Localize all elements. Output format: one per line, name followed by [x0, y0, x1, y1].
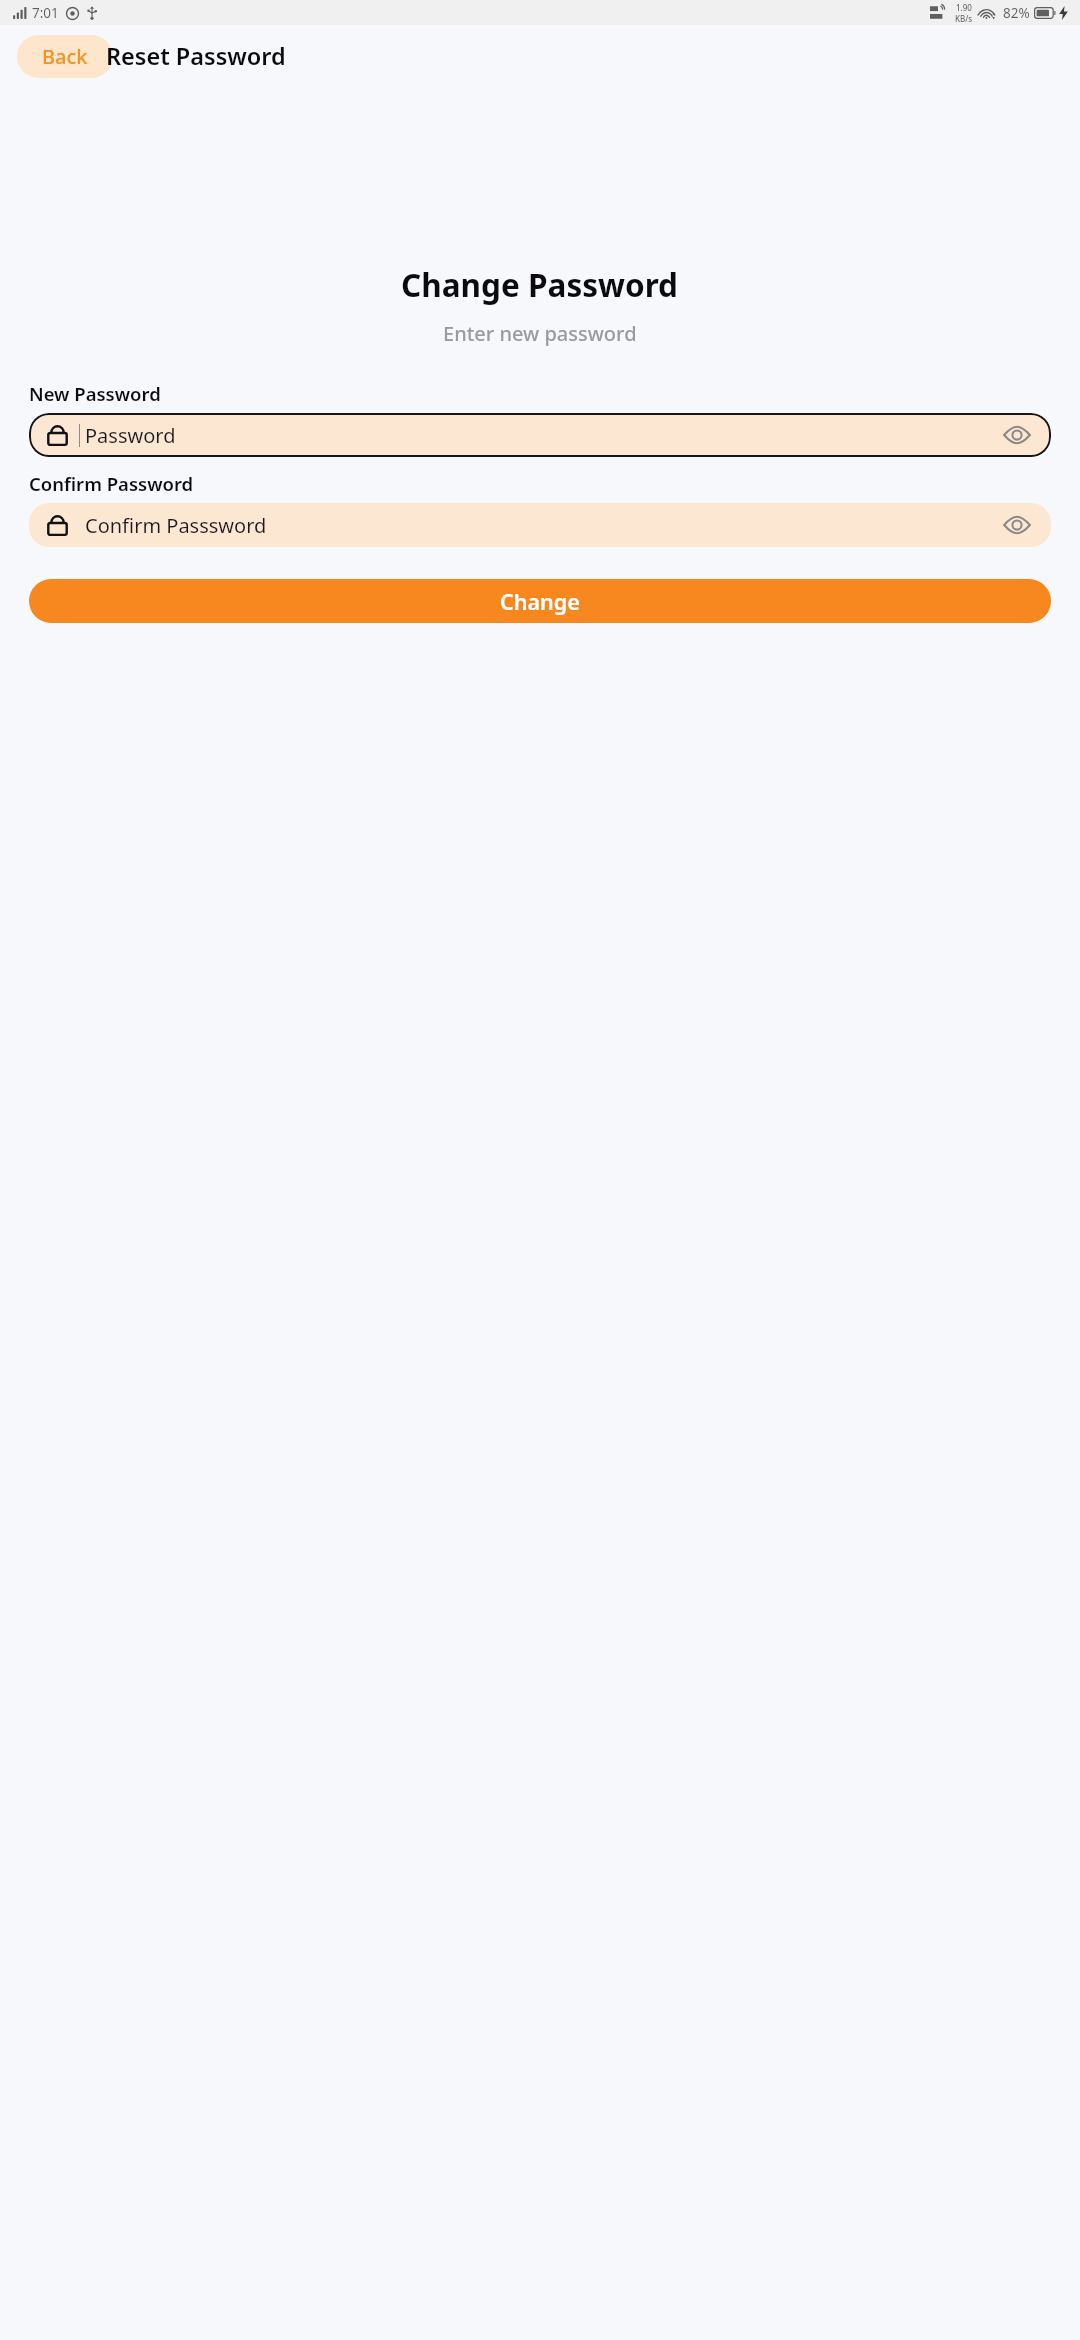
staticText: Change Password [401, 263, 679, 306]
staticText: Confirm Password [29, 471, 194, 496]
staticText: Password [85, 422, 176, 449]
button[interactable]: Confirm Passsword [29, 503, 1051, 547]
staticText: Enter new password [443, 320, 637, 347]
staticText: 7:01 [32, 4, 59, 22]
staticText: Reset Password [106, 40, 286, 72]
staticText: 1.90 [956, 2, 972, 13]
staticText: Back [42, 43, 88, 70]
button[interactable]: Show password [1002, 510, 1032, 540]
button[interactable]: Change [29, 579, 1051, 623]
button[interactable]: Back [17, 35, 113, 78]
button[interactable]: Password [29, 413, 1051, 457]
staticText: 82% [1003, 4, 1030, 22]
button[interactable]: Show password [1002, 420, 1032, 450]
staticText: KB/s [955, 13, 973, 24]
staticText: New Password [29, 381, 161, 406]
staticText: Confirm Passsword [85, 512, 267, 539]
staticText: Change [500, 587, 580, 616]
